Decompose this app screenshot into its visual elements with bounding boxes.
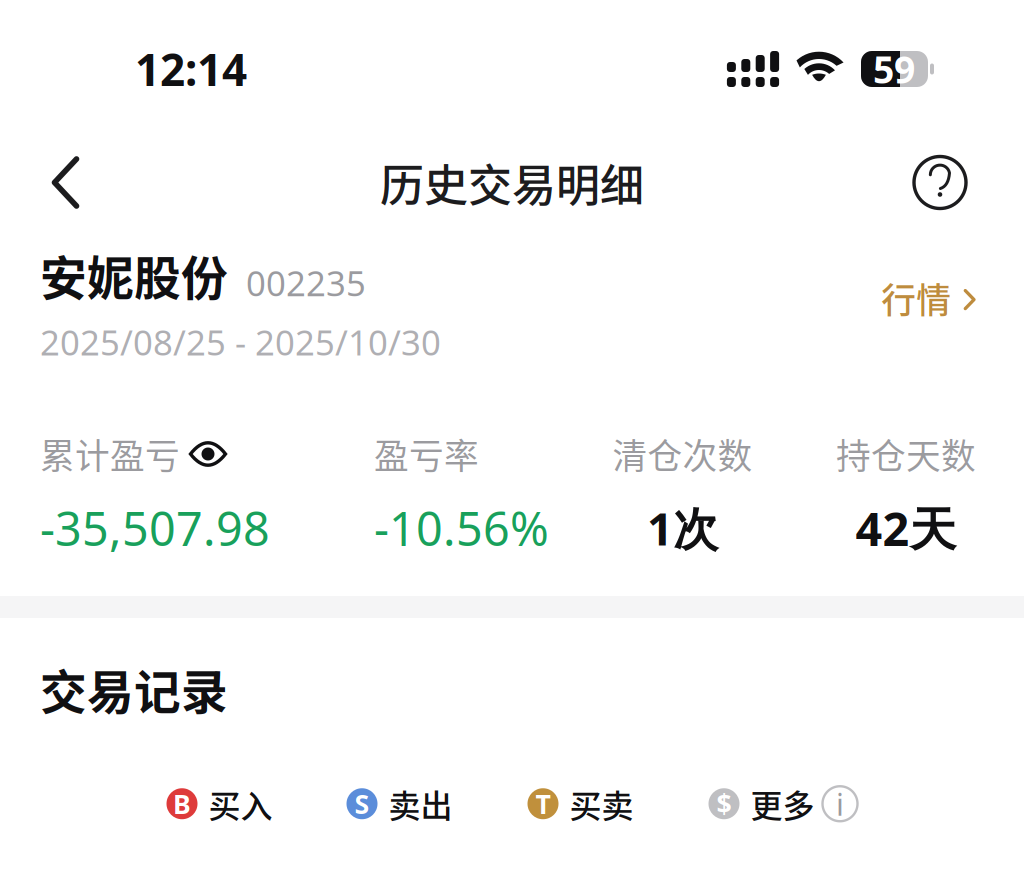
staticText: 59 — [873, 44, 915, 94]
staticText: 12:14 — [135, 40, 247, 98]
staticText: 行情 — [881, 273, 951, 323]
staticText: 更多 — [750, 781, 814, 827]
staticText: 买入 — [208, 781, 272, 827]
staticText: -35,507.98 — [40, 497, 270, 559]
staticText: 买卖 — [569, 781, 633, 827]
staticText: 42天 — [855, 497, 956, 559]
staticText: i — [836, 783, 844, 824]
staticText: 2025/08/25 - 2025/10/30 — [40, 319, 441, 365]
staticText: B — [173, 786, 191, 821]
button[interactable]: Back — [0, 138, 131, 227]
staticText: T — [535, 786, 550, 821]
staticText: 盈亏率 — [374, 429, 479, 479]
button[interactable]: $ — [708, 781, 857, 827]
button[interactable]: Help — [856, 138, 1024, 227]
staticText: $ — [716, 786, 731, 821]
button[interactable]: T — [527, 781, 633, 827]
button[interactable]: S — [346, 781, 452, 827]
staticText: 清仓次数 — [612, 429, 752, 479]
staticText: 历史交易明细 — [380, 151, 644, 214]
staticText: 卖出 — [388, 781, 452, 827]
staticText: 累计盈亏 — [40, 429, 180, 479]
button[interactable]: B — [166, 781, 272, 827]
button[interactable]: 行情 — [875, 250, 974, 323]
staticText: 交易记录 — [40, 655, 228, 723]
staticText: 安妮股份 — [40, 241, 228, 309]
staticText: 1次 — [647, 498, 718, 558]
staticText: 002235 — [246, 260, 366, 306]
staticText: S — [354, 786, 369, 821]
staticText: 持仓天数 — [836, 429, 976, 479]
staticText: -10.56% — [374, 497, 549, 559]
